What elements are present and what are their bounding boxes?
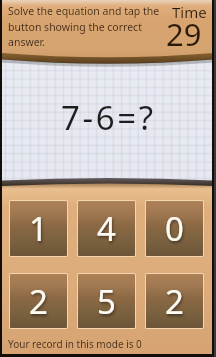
button[interactable]: 0 <box>146 201 203 256</box>
staticText: 2 <box>29 279 48 324</box>
staticText: 1 <box>29 206 48 251</box>
button[interactable]: 2 <box>146 274 203 328</box>
staticText: 4 <box>97 206 116 251</box>
button[interactable]: 2 <box>10 274 67 328</box>
staticText: Your record in this mode is 0 <box>8 337 142 351</box>
staticText: Solve the equation and tap the button sh… <box>8 4 164 49</box>
button[interactable]: 5 <box>78 274 135 328</box>
staticText: Time <box>172 2 207 22</box>
staticText: 5 <box>97 279 116 324</box>
button[interactable]: 1 <box>10 201 67 256</box>
staticText: 0 <box>165 206 184 251</box>
staticText: 7-6=? <box>61 95 156 140</box>
staticText: 2 <box>165 279 184 324</box>
staticText: 29 <box>166 13 202 55</box>
button[interactable]: 4 <box>78 201 135 256</box>
